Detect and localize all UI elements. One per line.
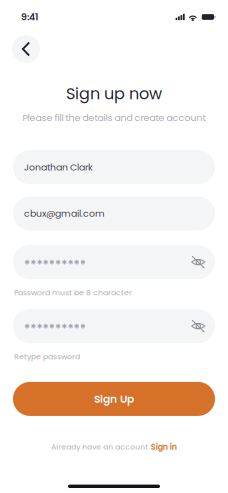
staticText: * xyxy=(55,320,61,337)
staticText: * xyxy=(49,320,55,337)
staticText: * xyxy=(61,320,67,337)
staticText: * xyxy=(74,320,80,337)
staticText: 9:41 xyxy=(21,10,38,24)
staticText: * xyxy=(24,320,30,337)
staticText: * xyxy=(49,256,55,273)
staticText: Sign up now xyxy=(66,82,162,105)
staticText: Jonathan Clark xyxy=(24,161,93,174)
staticText: * xyxy=(80,256,86,273)
staticText: * xyxy=(43,320,49,337)
staticText: * xyxy=(74,256,80,273)
button[interactable]: Sign Up xyxy=(13,382,215,416)
staticText: * xyxy=(36,256,42,273)
staticText: Sign Up xyxy=(94,391,134,406)
staticText: * xyxy=(24,256,30,273)
staticText: Please fill the details and create accou… xyxy=(22,111,205,124)
staticText: * xyxy=(80,320,86,337)
button[interactable]: Show password xyxy=(190,255,206,269)
staticText: * xyxy=(67,256,73,273)
button[interactable]: Back xyxy=(12,35,40,63)
staticText: * xyxy=(30,320,36,337)
staticText: Retype password xyxy=(14,351,80,362)
staticText: Sign in xyxy=(151,441,177,452)
staticText: * xyxy=(55,256,61,273)
staticText: cbux@gmail.com xyxy=(24,207,105,220)
staticText: * xyxy=(43,256,49,273)
button[interactable]: Sign in xyxy=(151,441,177,452)
staticText: * xyxy=(36,320,42,337)
staticText: * xyxy=(61,256,67,273)
staticText: Password must be 8 character xyxy=(14,287,132,298)
staticText: Already have an account xyxy=(51,442,148,452)
staticText: * xyxy=(67,320,73,337)
button[interactable]: Show password xyxy=(190,319,206,333)
staticText: * xyxy=(30,256,36,273)
